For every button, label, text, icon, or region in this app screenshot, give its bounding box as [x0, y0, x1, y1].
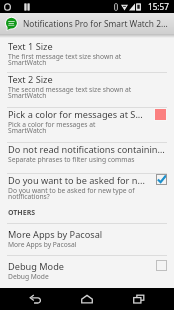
button[interactable]: Do you want to be asked for n... — [0, 174, 174, 208]
button[interactable]: Home — [70, 288, 104, 310]
staticText: Pick a color for messages at S... — [8, 108, 143, 120]
staticText: Debug Mode — [8, 272, 49, 281]
staticText: Text 1 Size — [8, 40, 53, 52]
staticText: Notifications Pro for Smart Watch 2... — [23, 18, 168, 29]
staticText: 15:57 — [148, 1, 169, 12]
staticText: More Apps by Pacosal — [8, 228, 103, 240]
button[interactable]: Back — [18, 288, 52, 310]
button[interactable]: Text 1 Size — [0, 38, 174, 72]
staticText: The second message text size shown at Sm… — [8, 85, 132, 100]
staticText: Separate phrases to filter using commas — [8, 155, 135, 164]
staticText: Pick a color for messages at SmartWatch — [8, 120, 96, 135]
button[interactable]: Pick a color for messages at S... — [0, 108, 174, 142]
button[interactable]: Debug Mode — [0, 256, 174, 288]
staticText: The first message text size shown at Sma… — [8, 52, 122, 67]
button[interactable]: Text 2 Size — [0, 73, 174, 107]
staticText: Do you want to be asked for n... — [8, 174, 145, 186]
staticText: OTHERS — [8, 208, 36, 217]
button[interactable]: More Apps by Pacosal — [0, 224, 174, 255]
staticText: Do you want to be asked for new type of … — [8, 186, 135, 201]
staticText: More Apps by Pacosal — [8, 240, 77, 249]
staticText: Do not read notifications containing... — [8, 143, 167, 155]
staticText: Debug Mode — [8, 260, 64, 272]
button[interactable]: Recent apps — [122, 288, 156, 310]
staticText: Text 2 Size — [8, 73, 53, 85]
button[interactable]: Do not read notifications containing... — [0, 143, 174, 173]
